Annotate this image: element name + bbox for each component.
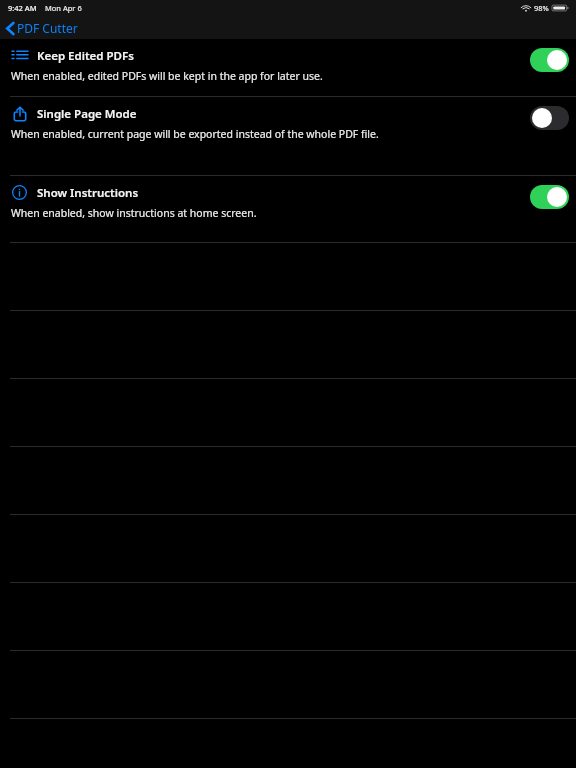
staticText: Single Page Mode [37,106,137,122]
staticText: Show Instructions [37,185,139,201]
button[interactable]: List [0,39,576,96]
staticText: When enabled, show instructions at home … [11,206,257,220]
button[interactable] [527,182,572,212]
other: List [11,47,28,64]
button[interactable] [527,103,572,133]
staticText: Mon Apr 6 [45,3,82,13]
staticText: When enabled, edited PDFs will be kept i… [11,69,323,83]
staticText: PDF Cutter [17,20,78,36]
staticText: 98% [534,3,549,13]
staticText: When enabled, current page will be expor… [11,127,379,141]
button[interactable]: PDF Cutter [0,18,86,38]
staticText: Keep Edited PDFs [37,48,134,64]
button[interactable]: Share [0,97,576,175]
button[interactable]: Info [0,176,576,242]
staticText: 9:42 AM [8,3,37,13]
button[interactable] [527,45,572,75]
other: Share [11,105,28,122]
other: Info [11,184,28,201]
